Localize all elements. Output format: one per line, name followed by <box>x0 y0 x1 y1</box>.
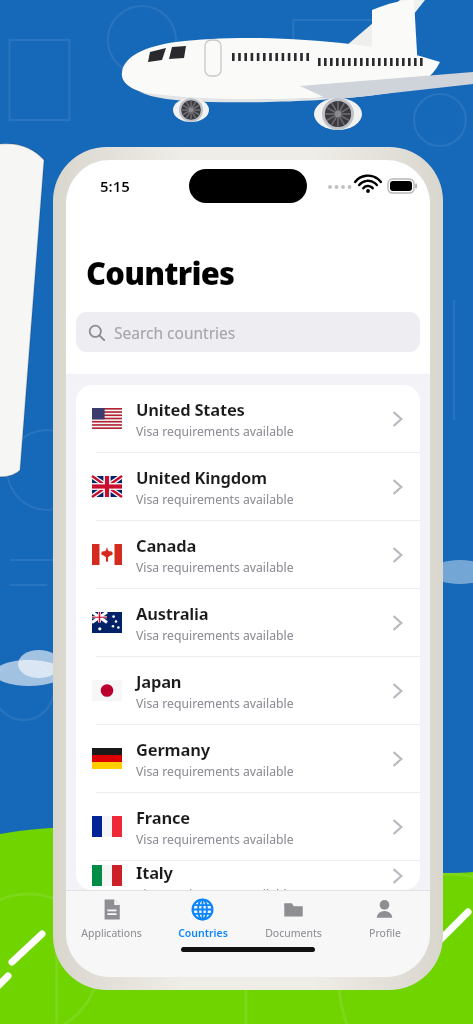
button[interactable]: United Kingdom <box>76 453 420 520</box>
staticText: Visa requirements available <box>136 886 294 890</box>
button[interactable]: France <box>76 793 420 860</box>
staticText: Australia <box>136 602 209 624</box>
button[interactable]: Countries <box>157 891 248 947</box>
staticText: Visa requirements available <box>136 559 294 576</box>
staticText: Documents <box>265 926 322 940</box>
other: Applications <box>100 898 123 921</box>
staticText: Japan <box>136 670 182 692</box>
staticText: Visa requirements available <box>136 695 294 712</box>
staticText: United States <box>136 398 245 420</box>
staticText: Visa requirements available <box>136 763 294 780</box>
button[interactable]: Documents <box>248 891 339 947</box>
staticText: Canada <box>136 534 197 556</box>
other: Documents <box>282 898 305 921</box>
staticText: Visa requirements available <box>136 831 294 848</box>
button[interactable]: Germany <box>76 725 420 792</box>
button[interactable]: Profile <box>339 891 430 947</box>
staticText: Countries <box>86 252 235 294</box>
staticText: Countries <box>178 926 228 940</box>
staticText: France <box>136 806 190 828</box>
other: Countries <box>191 898 214 921</box>
other: Profile <box>373 898 396 921</box>
button[interactable]: Japan <box>76 657 420 724</box>
button[interactable]: United States <box>76 385 420 452</box>
staticText: Applications <box>81 926 142 940</box>
button[interactable]: Applications <box>66 891 157 947</box>
button[interactable]: Search countries <box>76 312 420 352</box>
staticText: Visa requirements available <box>136 423 294 440</box>
staticText: 5:15 <box>100 176 130 196</box>
button[interactable]: Italy <box>76 861 420 890</box>
button[interactable]: Australia <box>76 589 420 656</box>
staticText: Profile <box>369 926 401 940</box>
staticText: Visa requirements available <box>136 627 294 644</box>
button[interactable]: Canada <box>76 521 420 588</box>
staticText: Search countries <box>114 322 236 343</box>
staticText: Italy <box>136 861 173 883</box>
staticText: United Kingdom <box>136 466 267 488</box>
staticText: Visa requirements available <box>136 491 294 508</box>
staticText: Germany <box>136 738 210 760</box>
